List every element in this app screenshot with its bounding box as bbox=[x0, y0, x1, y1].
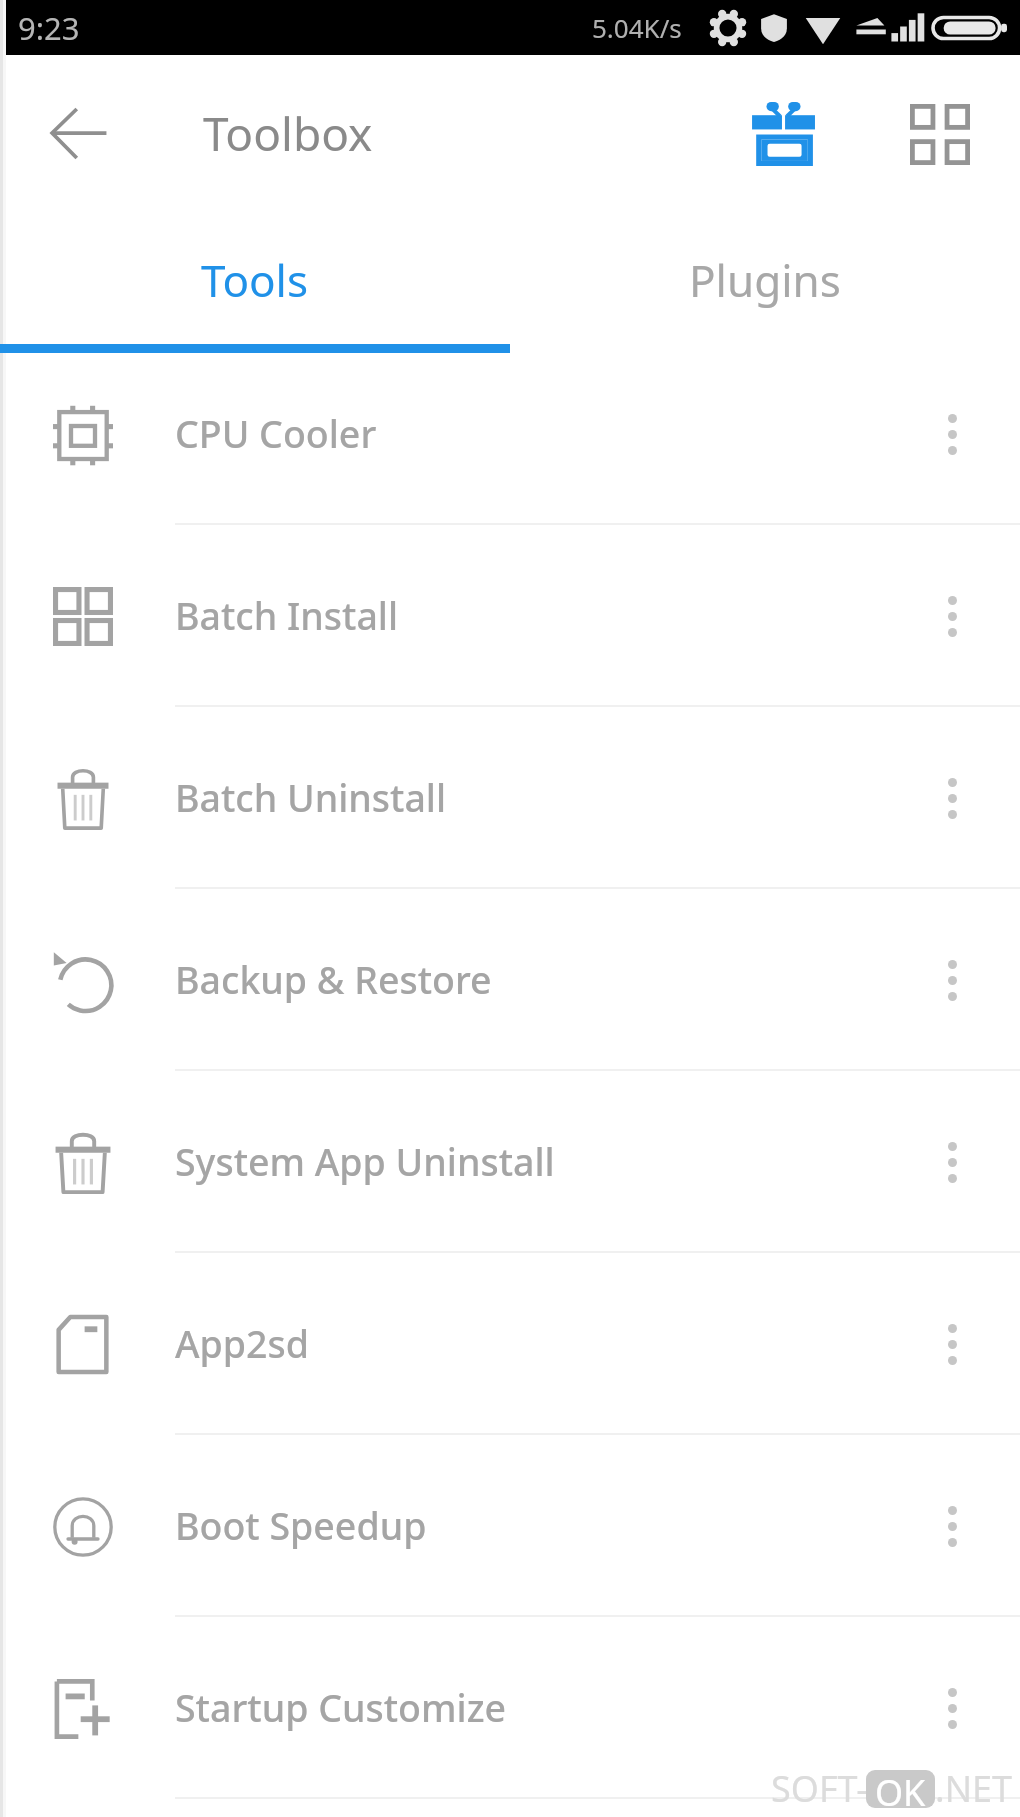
staticText: 9:23 bbox=[18, 7, 80, 49]
button[interactable]: Gifts bbox=[739, 90, 827, 178]
staticText: OK bbox=[875, 1770, 926, 1806]
staticText: Batch Install bbox=[175, 590, 399, 641]
button[interactable]: Plugins bbox=[510, 203, 1020, 343]
staticText: 5.04K/s bbox=[592, 10, 682, 45]
button[interactable]: App2sd bbox=[0, 1253, 1020, 1435]
button[interactable]: Tools bbox=[0, 203, 510, 343]
staticText: CPU Cooler bbox=[175, 408, 377, 459]
button[interactable]: More options bbox=[884, 1253, 1020, 1435]
button[interactable]: System App Uninstall bbox=[0, 1071, 1020, 1253]
button[interactable]: Boot Speedup bbox=[0, 1435, 1020, 1617]
staticText: Plugins bbox=[689, 250, 841, 310]
button[interactable]: More options bbox=[884, 525, 1020, 707]
button[interactable]: More options bbox=[884, 1071, 1020, 1253]
staticText: Tools bbox=[201, 250, 309, 310]
button[interactable]: More options bbox=[884, 889, 1020, 1071]
button[interactable]: Backup & Restore bbox=[0, 889, 1020, 1071]
button[interactable]: Batch Uninstall bbox=[0, 707, 1020, 889]
staticText: Startup Customize bbox=[175, 1682, 507, 1733]
staticText: SOFT- bbox=[771, 1764, 868, 1813]
staticText: Backup & Restore bbox=[175, 954, 492, 1005]
button[interactable]: Back bbox=[34, 91, 124, 181]
staticText: App2sd bbox=[175, 1318, 309, 1369]
staticText: Toolbox bbox=[203, 102, 373, 165]
staticText: .NET bbox=[935, 1764, 1013, 1813]
button[interactable]: CPU Cooler bbox=[0, 343, 1020, 525]
staticText: System App Uninstall bbox=[175, 1136, 555, 1187]
button[interactable]: More options bbox=[884, 707, 1020, 889]
button[interactable]: More options bbox=[884, 343, 1020, 525]
staticText: Boot Speedup bbox=[175, 1500, 427, 1551]
button[interactable]: Batch Install bbox=[0, 525, 1020, 707]
staticText: Batch Uninstall bbox=[175, 772, 447, 823]
button[interactable]: More options bbox=[884, 1435, 1020, 1617]
button[interactable]: Startup Customize bbox=[0, 1617, 1020, 1799]
button[interactable]: Grid view bbox=[896, 90, 984, 178]
button[interactable]: More options bbox=[884, 1617, 1020, 1799]
